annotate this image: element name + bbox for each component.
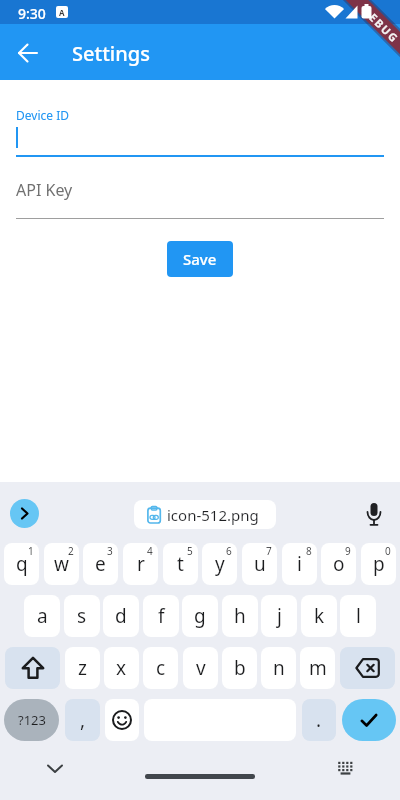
button[interactable]: o [321,543,356,585]
button[interactable] [41,755,69,783]
staticText: p [373,551,385,577]
staticText: 5 [187,544,193,558]
staticText: q [16,551,28,577]
staticText: 4 [147,544,153,558]
button[interactable] [10,499,39,528]
staticText: u [254,551,266,577]
staticText: icon-512.png [167,505,259,525]
staticText: r [137,551,145,577]
button[interactable] [5,647,60,689]
staticText: y [215,551,225,577]
staticText: 0 [385,544,391,558]
staticText: Settings [72,40,150,67]
staticText: n [273,655,285,681]
staticText: l [356,603,361,629]
button[interactable] [340,647,395,689]
staticText: 6 [226,544,232,558]
button[interactable]: f [143,595,179,637]
button[interactable] [145,774,255,779]
staticText: g [194,603,206,629]
button[interactable]: n [261,647,296,689]
staticText: e [95,551,106,577]
staticText: API Key [16,179,73,201]
staticText: A [59,7,65,18]
button[interactable]: q [4,543,39,585]
button[interactable] [331,754,359,782]
staticText: DEBUG [359,3,400,46]
button[interactable] [16,168,384,219]
staticText: v [196,655,206,681]
button[interactable]: Save [167,241,233,277]
button[interactable]: x [104,647,139,689]
button[interactable]: l [340,595,376,637]
staticText: h [234,603,246,629]
staticText: . [316,707,322,733]
staticText: m [309,655,327,681]
button[interactable]: b [222,647,257,689]
button[interactable] [16,100,384,157]
staticText: ?123 [18,711,46,729]
staticText: s [77,603,87,629]
button[interactable]: t [163,543,198,585]
button[interactable]: icon-512.png [134,500,276,529]
staticText: 9 [345,544,351,558]
staticText: , [80,707,86,733]
staticText: t [177,551,184,577]
staticText: a [37,603,48,629]
button[interactable]: h [222,595,258,637]
staticText: j [277,603,282,629]
staticText: 1 [28,544,34,558]
staticText: w [54,551,69,577]
staticText: x [116,655,127,681]
staticText: i [297,551,302,577]
button[interactable]: u [242,543,277,585]
staticText: o [333,551,345,577]
button[interactable]: v [183,647,218,689]
button[interactable]: j [261,595,297,637]
staticText: 3 [107,544,113,558]
staticText: 9:30 [18,4,46,23]
button[interactable]: s [64,595,100,637]
button[interactable] [342,699,396,741]
staticText: b [234,655,246,681]
staticText: 7 [266,544,272,558]
button[interactable] [12,36,44,68]
staticText: 8 [306,544,312,558]
button[interactable]: i [282,543,317,585]
button[interactable]: p [361,543,396,585]
button[interactable] [105,699,139,741]
button[interactable]: k [301,595,337,637]
button[interactable]: m [300,647,335,689]
staticText: z [78,655,87,681]
staticText: d [115,603,127,629]
button[interactable]: z [65,647,100,689]
button[interactable]: a [24,595,60,637]
button[interactable]: , [65,699,100,741]
staticText: 2 [68,544,74,558]
staticText: Device ID [16,107,69,123]
button[interactable]: ?123 [4,699,59,741]
button[interactable]: w [44,543,79,585]
button[interactable]: c [143,647,178,689]
button[interactable]: r [123,543,158,585]
button[interactable]: g [182,595,218,637]
staticText: k [314,603,325,629]
button[interactable]: e [83,543,118,585]
button[interactable]: . [302,699,336,741]
button[interactable]: y [202,543,237,585]
staticText: f [158,603,165,629]
staticText: Save [183,249,217,269]
button[interactable]: d [103,595,139,637]
staticText: c [156,655,166,681]
button[interactable] [358,498,390,530]
